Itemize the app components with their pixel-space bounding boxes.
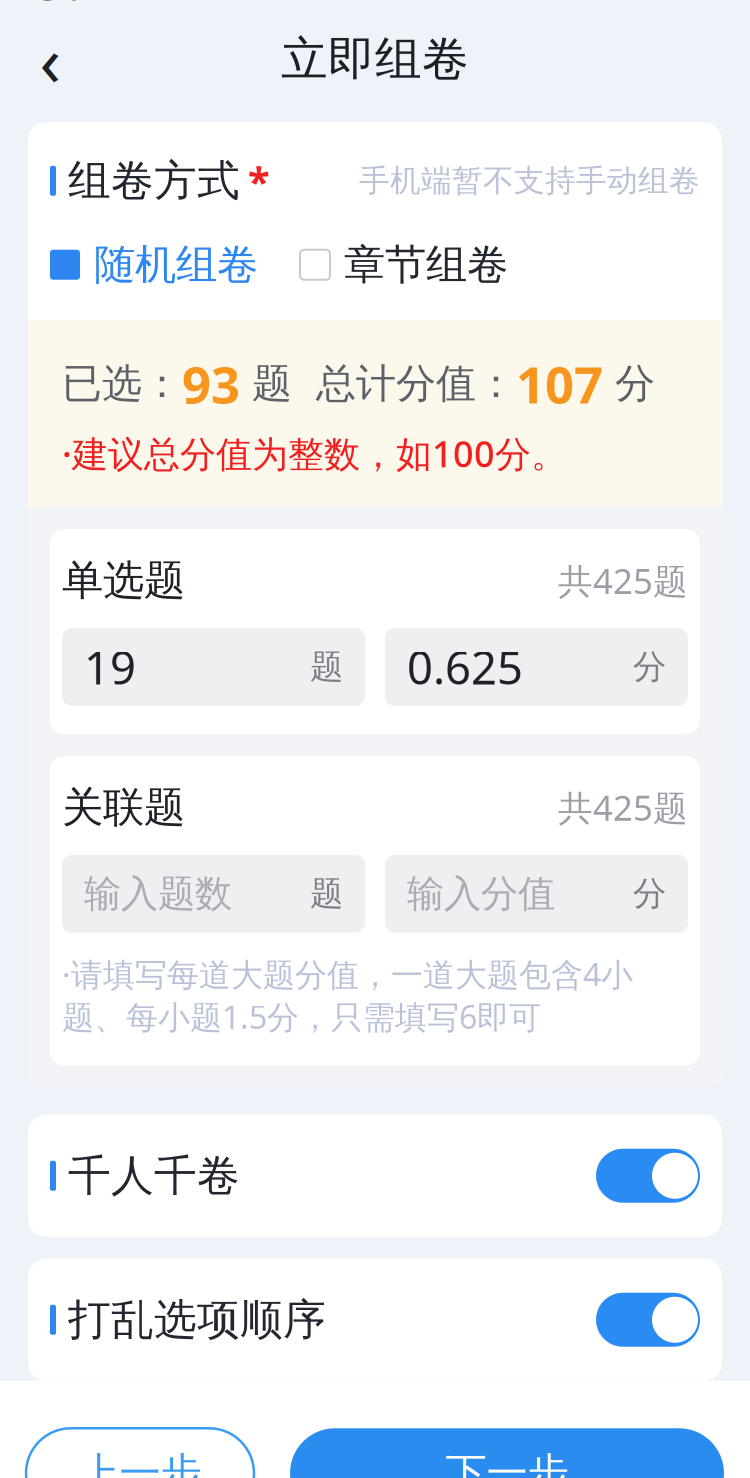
staticText: 单选题 [62, 555, 185, 606]
staticText: 分 [633, 873, 666, 914]
staticText: ·建议总分值为整数，如100分。 [62, 429, 567, 477]
button[interactable]: 返回 [18, 27, 82, 91]
staticText: 93 [182, 350, 240, 417]
staticText: 分 [633, 646, 666, 687]
staticText: 输入分值 [407, 871, 555, 917]
staticText: ·请填写每道大题分值，一道大题包含4小题、每小题1.5分，只需填写6即可 [62, 953, 633, 1038]
staticText: * [248, 154, 270, 207]
staticText: 手机端暂不支持手动组卷 [359, 162, 700, 200]
staticText: 共425题 [558, 784, 688, 830]
staticText: 随机组卷 [94, 239, 258, 290]
button[interactable]: 千人千卷 [28, 1115, 722, 1237]
staticText: 下一步 [445, 1448, 568, 1478]
button[interactable]: 输入分值 [385, 855, 688, 933]
button[interactable]: 章节组卷 [300, 239, 508, 290]
staticText: 组卷方式 [68, 155, 240, 207]
staticText: 107 [516, 350, 603, 417]
staticText: 关联题 [62, 782, 185, 833]
staticText: 打乱选项顺序 [68, 1293, 326, 1346]
staticText: 上一步 [78, 1448, 201, 1478]
button[interactable]: 下一步 [290, 1428, 724, 1478]
staticText: 分 [603, 359, 655, 408]
button[interactable]: 打乱选项顺序 [28, 1259, 722, 1381]
staticText: 19 [84, 637, 136, 697]
staticText: 题 [310, 646, 343, 687]
staticText: 章节组卷 [344, 239, 508, 290]
staticText: 题 [310, 873, 343, 914]
button[interactable]: 19 [62, 628, 365, 706]
staticText: 已选： [62, 359, 182, 408]
button[interactable]: 输入题数 [62, 855, 365, 933]
staticText: 共425题 [558, 558, 688, 604]
staticText: 题 [240, 359, 292, 408]
staticText: 9:41 [38, 0, 139, 14]
button[interactable]: 上一步 [26, 1428, 254, 1478]
staticText: 立即组卷 [281, 31, 469, 88]
button[interactable]: 0.625 [385, 628, 688, 706]
staticText: 千人千卷 [68, 1149, 240, 1202]
staticText: 输入题数 [84, 871, 232, 917]
staticText: 0.625 [407, 637, 523, 697]
staticText: 总计分值： [292, 359, 516, 408]
button[interactable]: 随机组卷 [50, 239, 258, 290]
staticText: ‹ [39, 13, 60, 105]
